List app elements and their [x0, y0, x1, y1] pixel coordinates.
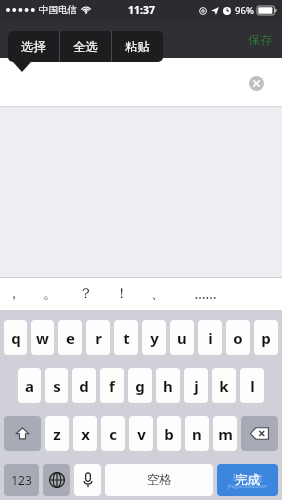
staticText: o — [233, 328, 243, 348]
button[interactable]: Bai 百度 — [217, 464, 278, 496]
staticText: t — [123, 328, 130, 348]
staticText: 保存 — [248, 32, 272, 47]
staticText: h — [163, 376, 173, 396]
button[interactable]: o — [226, 320, 250, 355]
staticText: 96% — [235, 4, 254, 17]
staticText: 。 — [43, 285, 57, 303]
staticText: d — [79, 376, 89, 396]
button[interactable]: b — [157, 416, 181, 451]
button[interactable]: w — [31, 320, 54, 355]
button[interactable]: Backspace — [241, 416, 278, 451]
staticText: jingyan.baidu.com — [228, 483, 267, 489]
staticText: a — [25, 376, 34, 396]
staticText: f — [109, 376, 115, 396]
staticText: n — [192, 424, 202, 444]
button[interactable]: d — [72, 368, 96, 403]
staticText: j — [194, 376, 199, 396]
staticText: z — [53, 424, 61, 444]
button[interactable]: ！ — [106, 277, 138, 310]
button[interactable]: Shift — [4, 416, 41, 451]
staticText: g — [135, 376, 145, 396]
staticText: l — [250, 376, 255, 396]
staticText: 、 — [151, 285, 165, 303]
button[interactable]: s — [45, 368, 68, 403]
staticText: 粘贴 — [125, 39, 150, 55]
button[interactable]: e — [58, 320, 82, 355]
staticText: 中国电信 — [39, 4, 77, 16]
staticText: v — [137, 424, 146, 444]
button[interactable]: 选择 — [8, 31, 59, 62]
button[interactable]: a — [18, 368, 41, 403]
button[interactable]: 保存 — [238, 26, 282, 53]
button[interactable]: 123 — [4, 464, 39, 496]
staticText: r — [95, 328, 102, 348]
button[interactable]: g — [128, 368, 152, 403]
staticText: 全选 — [73, 39, 98, 55]
staticText: w — [36, 328, 49, 348]
staticText: q — [11, 328, 21, 348]
button[interactable]: f — [100, 368, 124, 403]
button[interactable]: j — [184, 368, 208, 403]
button[interactable]: 。 — [34, 277, 66, 310]
button[interactable]: v — [129, 416, 153, 451]
button[interactable]: 空格 — [105, 464, 213, 496]
staticText: ！ — [115, 285, 129, 303]
button[interactable]: t — [114, 320, 138, 355]
staticText: c — [109, 424, 117, 444]
button[interactable]: x — [73, 416, 97, 451]
staticText: …… — [194, 284, 217, 303]
staticText: 空格 — [147, 472, 172, 488]
staticText: 选择 — [21, 39, 46, 55]
staticText: u — [177, 328, 187, 348]
button[interactable]: Voice input — [74, 464, 101, 496]
staticText: b — [164, 424, 174, 444]
button[interactable]: c — [101, 416, 125, 451]
button[interactable]: 、 — [142, 277, 174, 310]
button[interactable]: r — [86, 320, 110, 355]
button[interactable]: q — [4, 320, 27, 355]
button[interactable]: h — [156, 368, 180, 403]
staticText: k — [219, 376, 229, 396]
button[interactable]: m — [213, 416, 237, 451]
button[interactable]: 粘贴 — [112, 31, 163, 62]
button[interactable]: ？ — [70, 277, 102, 310]
staticText: s — [53, 376, 61, 396]
staticText: p — [261, 328, 271, 348]
staticText: e — [66, 328, 75, 348]
button[interactable]: …… — [189, 277, 221, 310]
staticText: ， — [7, 285, 21, 303]
button[interactable]: Switch language — [43, 464, 70, 496]
staticText: x — [81, 424, 90, 444]
staticText: ？ — [79, 285, 93, 303]
button[interactable]: y — [142, 320, 166, 355]
button[interactable]: z — [45, 416, 69, 451]
staticText: i — [208, 328, 213, 348]
button[interactable]: Clear text — [244, 71, 268, 95]
button[interactable]: u — [170, 320, 194, 355]
button[interactable]: i — [198, 320, 222, 355]
staticText: Bai 百度 — [233, 472, 263, 483]
button[interactable]: ， — [0, 277, 30, 310]
staticText: 123 — [11, 472, 32, 488]
staticText: m — [218, 424, 233, 444]
staticText: 11:37 — [128, 3, 155, 17]
button[interactable]: 全选 — [60, 31, 111, 62]
button[interactable]: l — [240, 368, 264, 403]
staticText: 完成 — [235, 472, 260, 488]
button[interactable]: k — [212, 368, 236, 403]
staticText: y — [150, 328, 159, 348]
button[interactable]: n — [185, 416, 209, 451]
button[interactable]: p — [254, 320, 278, 355]
